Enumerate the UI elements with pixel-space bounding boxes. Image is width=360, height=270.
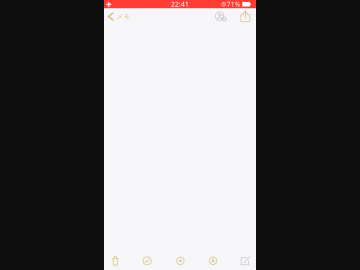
button[interactable]: メモ — [104, 9, 131, 24]
staticText: メモ — [117, 12, 131, 21]
button[interactable]: Share — [238, 8, 253, 24]
button[interactable]: Delete — [104, 251, 126, 270]
button[interactable]: Format — [191, 251, 223, 270]
staticText: 22:41 — [171, 0, 189, 9]
staticText: 71% — [227, 0, 241, 9]
button[interactable]: Add People — [203, 8, 238, 24]
button[interactable]: New Note — [223, 251, 255, 270]
button[interactable]: Checklist — [126, 251, 157, 270]
button[interactable]: Add Attachment — [157, 251, 191, 270]
